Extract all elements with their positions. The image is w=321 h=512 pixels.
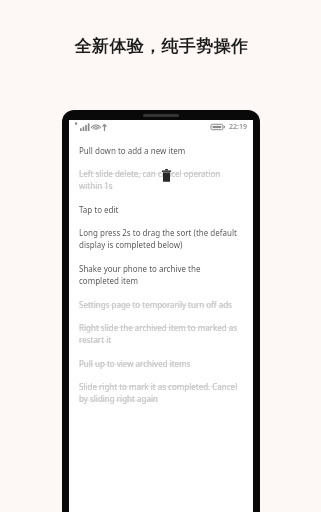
staticText: Settings page to temporarily turn off ad…	[79, 299, 232, 310]
staticText: Left slide delete, can cancel operation …	[79, 168, 241, 192]
staticText: Slide right to mark it as completed. Can…	[79, 381, 241, 405]
staticText: Tap to edit	[79, 204, 119, 215]
button[interactable]: Tap to edit	[69, 198, 253, 221]
button[interactable]: Pull up to view archived items	[69, 352, 253, 375]
button[interactable]: Long press 2s to drag the sort (the defa…	[69, 221, 253, 257]
staticText: Pull up to view archived items	[79, 358, 191, 369]
button[interactable]: Settings page to temporarily turn off ad…	[69, 293, 253, 316]
button[interactable]: Right slide the archived item to marked …	[69, 316, 253, 352]
staticText: Pull down to add a new item	[79, 145, 186, 156]
button[interactable]: Delete	[161, 169, 172, 182]
staticText: Right slide the archived item to marked …	[79, 322, 241, 346]
staticText: Shake your phone to archive the complete…	[79, 263, 241, 287]
button[interactable]: Slide right to mark it as completed. Can…	[69, 375, 253, 411]
button[interactable]: Shake your phone to archive the complete…	[69, 257, 253, 293]
staticText: 全新体验，纯手势操作	[74, 36, 248, 57]
staticText: 22:19	[229, 122, 247, 132]
button[interactable]: Pull down to add a new item	[69, 139, 253, 162]
button[interactable]: Left slide delete, can cancel operation …	[69, 162, 253, 198]
staticText: Long press 2s to drag the sort (the defa…	[79, 227, 241, 251]
